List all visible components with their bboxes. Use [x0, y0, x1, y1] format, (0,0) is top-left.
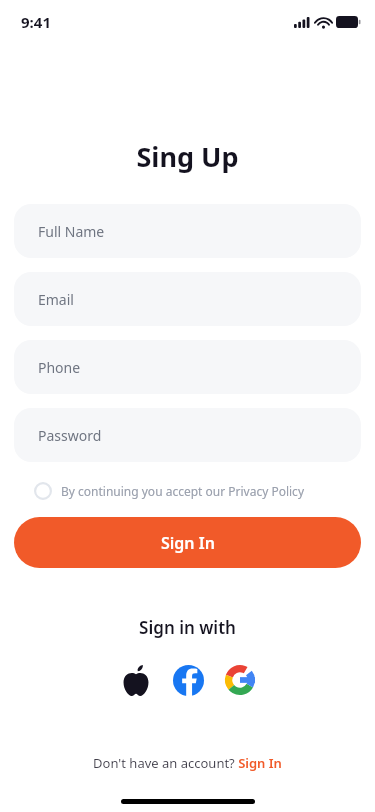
- button[interactable]: Phone: [14, 340, 361, 394]
- button[interactable]: Sign in with Apple: [118, 662, 154, 698]
- button[interactable]: Email: [14, 272, 361, 326]
- staticText: By continuing you accept our Privacy Pol…: [61, 483, 305, 499]
- staticText: Sign In: [161, 532, 215, 554]
- button[interactable]: By continuing you accept our Privacy Pol…: [14, 474, 325, 508]
- staticText: Full Name: [38, 222, 105, 241]
- button[interactable]: Don't have an account? Sign In: [0, 754, 375, 772]
- staticText: Sign in with: [0, 616, 375, 639]
- staticText: Sing Up: [0, 138, 375, 175]
- staticText: Password: [38, 426, 102, 445]
- button[interactable]: Sign In: [14, 517, 361, 568]
- button[interactable]: Sign in with Facebook: [170, 662, 206, 698]
- button[interactable]: Password: [14, 408, 361, 462]
- button[interactable]: Sign in with Google: [222, 662, 258, 698]
- staticText: Email: [38, 290, 74, 309]
- staticText: Don't have an account? Sign In: [93, 754, 282, 772]
- staticText: Phone: [38, 358, 81, 377]
- staticText: 9:41: [21, 12, 51, 32]
- button[interactable]: Full Name: [14, 204, 361, 258]
